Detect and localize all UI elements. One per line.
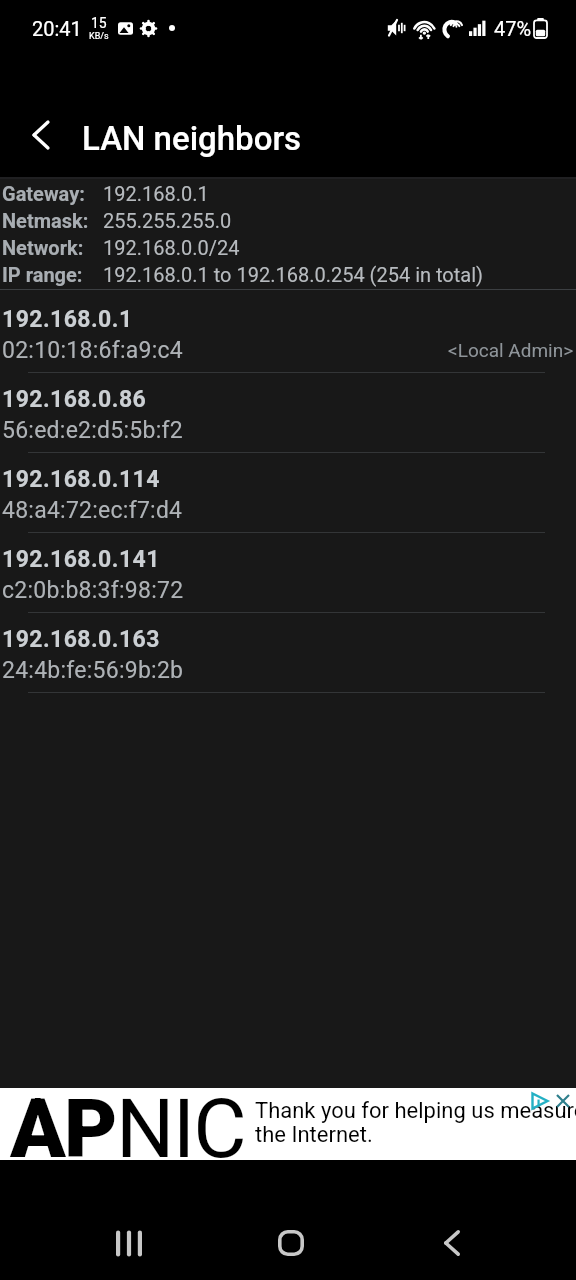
button[interactable]: Navigate up (8, 102, 74, 168)
staticText: <Local Admin> (448, 339, 574, 361)
staticText: KB/s (89, 31, 109, 42)
staticText: Network: (2, 236, 84, 259)
staticText: Netmask: (2, 209, 89, 232)
staticText: 192.168.0.141 (2, 546, 160, 573)
staticText: 192.168.0.163 (2, 626, 160, 653)
staticText: 192.168.0.114 (2, 466, 160, 493)
button[interactable]: 192.168.0.1 (0, 293, 576, 373)
staticText: 192.168.0.1 (103, 182, 209, 205)
button[interactable]: Recent apps (81, 1214, 176, 1272)
staticText: 47% (494, 17, 532, 40)
button[interactable]: 192.168.0.114 (0, 453, 576, 533)
staticText: 15 (91, 15, 107, 31)
staticText: IP range: (2, 263, 83, 286)
staticText: 192.168.0.1 to 192.168.0.254 (254 in tot… (103, 263, 483, 286)
staticText: 48:a4:72:ec:f7:d4 (2, 497, 183, 524)
staticText: Thank you for helping us measure (255, 1098, 576, 1124)
staticText: NIC (116, 1081, 245, 1177)
staticText: 56:ed:e2:d5:5b:f2 (2, 417, 183, 444)
staticText: 02:10:18:6f:a9:c4 (2, 337, 183, 364)
button[interactable]: Thank you for helping us measure (0, 1088, 576, 1160)
staticText: AP (10, 1081, 116, 1177)
staticText: 192.168.0.86 (2, 386, 147, 413)
staticText: Gateway: (2, 182, 85, 205)
button[interactable]: Home (243, 1214, 338, 1272)
button[interactable]: Back (404, 1214, 499, 1272)
staticText: 192.168.0.1 (2, 306, 133, 333)
staticText: 20:41 (32, 17, 82, 40)
staticText: c2:0b:b8:3f:98:72 (2, 577, 184, 604)
staticText: 24:4b:fe:56:9b:2b (2, 657, 184, 684)
staticText: the Internet. (255, 1122, 373, 1148)
staticText: LAN neighbors (82, 119, 302, 158)
button[interactable]: 192.168.0.163 (0, 613, 576, 693)
button[interactable]: 192.168.0.141 (0, 533, 576, 613)
button[interactable]: 192.168.0.86 (0, 373, 576, 453)
staticText: 192.168.0.0/24 (103, 236, 240, 259)
staticText: 255.255.255.0 (103, 209, 232, 232)
